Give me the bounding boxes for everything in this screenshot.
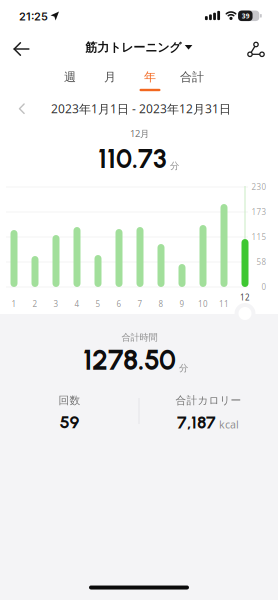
staticText: 230 xyxy=(251,182,266,192)
staticText: kcal xyxy=(219,417,239,431)
staticText: 59 xyxy=(59,411,79,433)
staticText: 110.73 xyxy=(98,143,167,175)
staticText: 5 xyxy=(95,299,100,309)
staticText: 10 xyxy=(198,299,208,309)
staticText: 週 xyxy=(64,70,76,84)
staticText: 173 xyxy=(251,207,266,217)
staticText: 2023年1月1日 - 2023年12月31日 xyxy=(51,101,231,117)
button[interactable]: 筋力トレーニング xyxy=(85,40,193,55)
staticText: 115 xyxy=(251,232,266,242)
staticText: 4 xyxy=(74,299,79,309)
staticText: 合計時間 xyxy=(121,332,157,343)
staticText: 筋力トレーニング xyxy=(85,40,181,55)
staticText: 6 xyxy=(116,299,121,309)
staticText: 7 xyxy=(137,299,142,309)
staticText: 7,187 xyxy=(177,412,216,433)
button[interactable]: 週 xyxy=(60,66,80,88)
staticText: 11 xyxy=(219,299,229,309)
staticText: 12 xyxy=(240,292,250,303)
button[interactable]: 前の年 xyxy=(13,98,30,119)
staticText: 12月 xyxy=(130,127,149,140)
staticText: 9 xyxy=(179,299,184,309)
button[interactable]: 合計 xyxy=(176,66,208,88)
staticText: 39 xyxy=(242,11,250,20)
staticText: 分 xyxy=(179,362,188,374)
staticText: 0 xyxy=(261,282,266,292)
staticText: 合計カロリー xyxy=(175,394,241,407)
staticText: 3 xyxy=(53,299,58,309)
staticText: 8 xyxy=(158,299,163,309)
staticText: 分 xyxy=(170,160,179,172)
staticText: 年 xyxy=(144,70,156,84)
button[interactable]: 月を選択 xyxy=(238,307,251,320)
staticText: 1 xyxy=(11,299,16,309)
staticText: 21:25 xyxy=(19,10,48,23)
button[interactable]: 共有 xyxy=(241,34,270,62)
button[interactable]: 年 xyxy=(140,66,160,88)
button[interactable]: 戻る xyxy=(7,36,36,62)
button[interactable]: 月 xyxy=(100,66,120,88)
staticText: 回数 xyxy=(58,394,80,407)
staticText: 2 xyxy=(32,299,37,309)
staticText: 合計 xyxy=(180,70,204,84)
staticText: 1278.50 xyxy=(83,343,176,377)
staticText: 58 xyxy=(256,257,266,267)
staticText: 月 xyxy=(104,70,116,84)
